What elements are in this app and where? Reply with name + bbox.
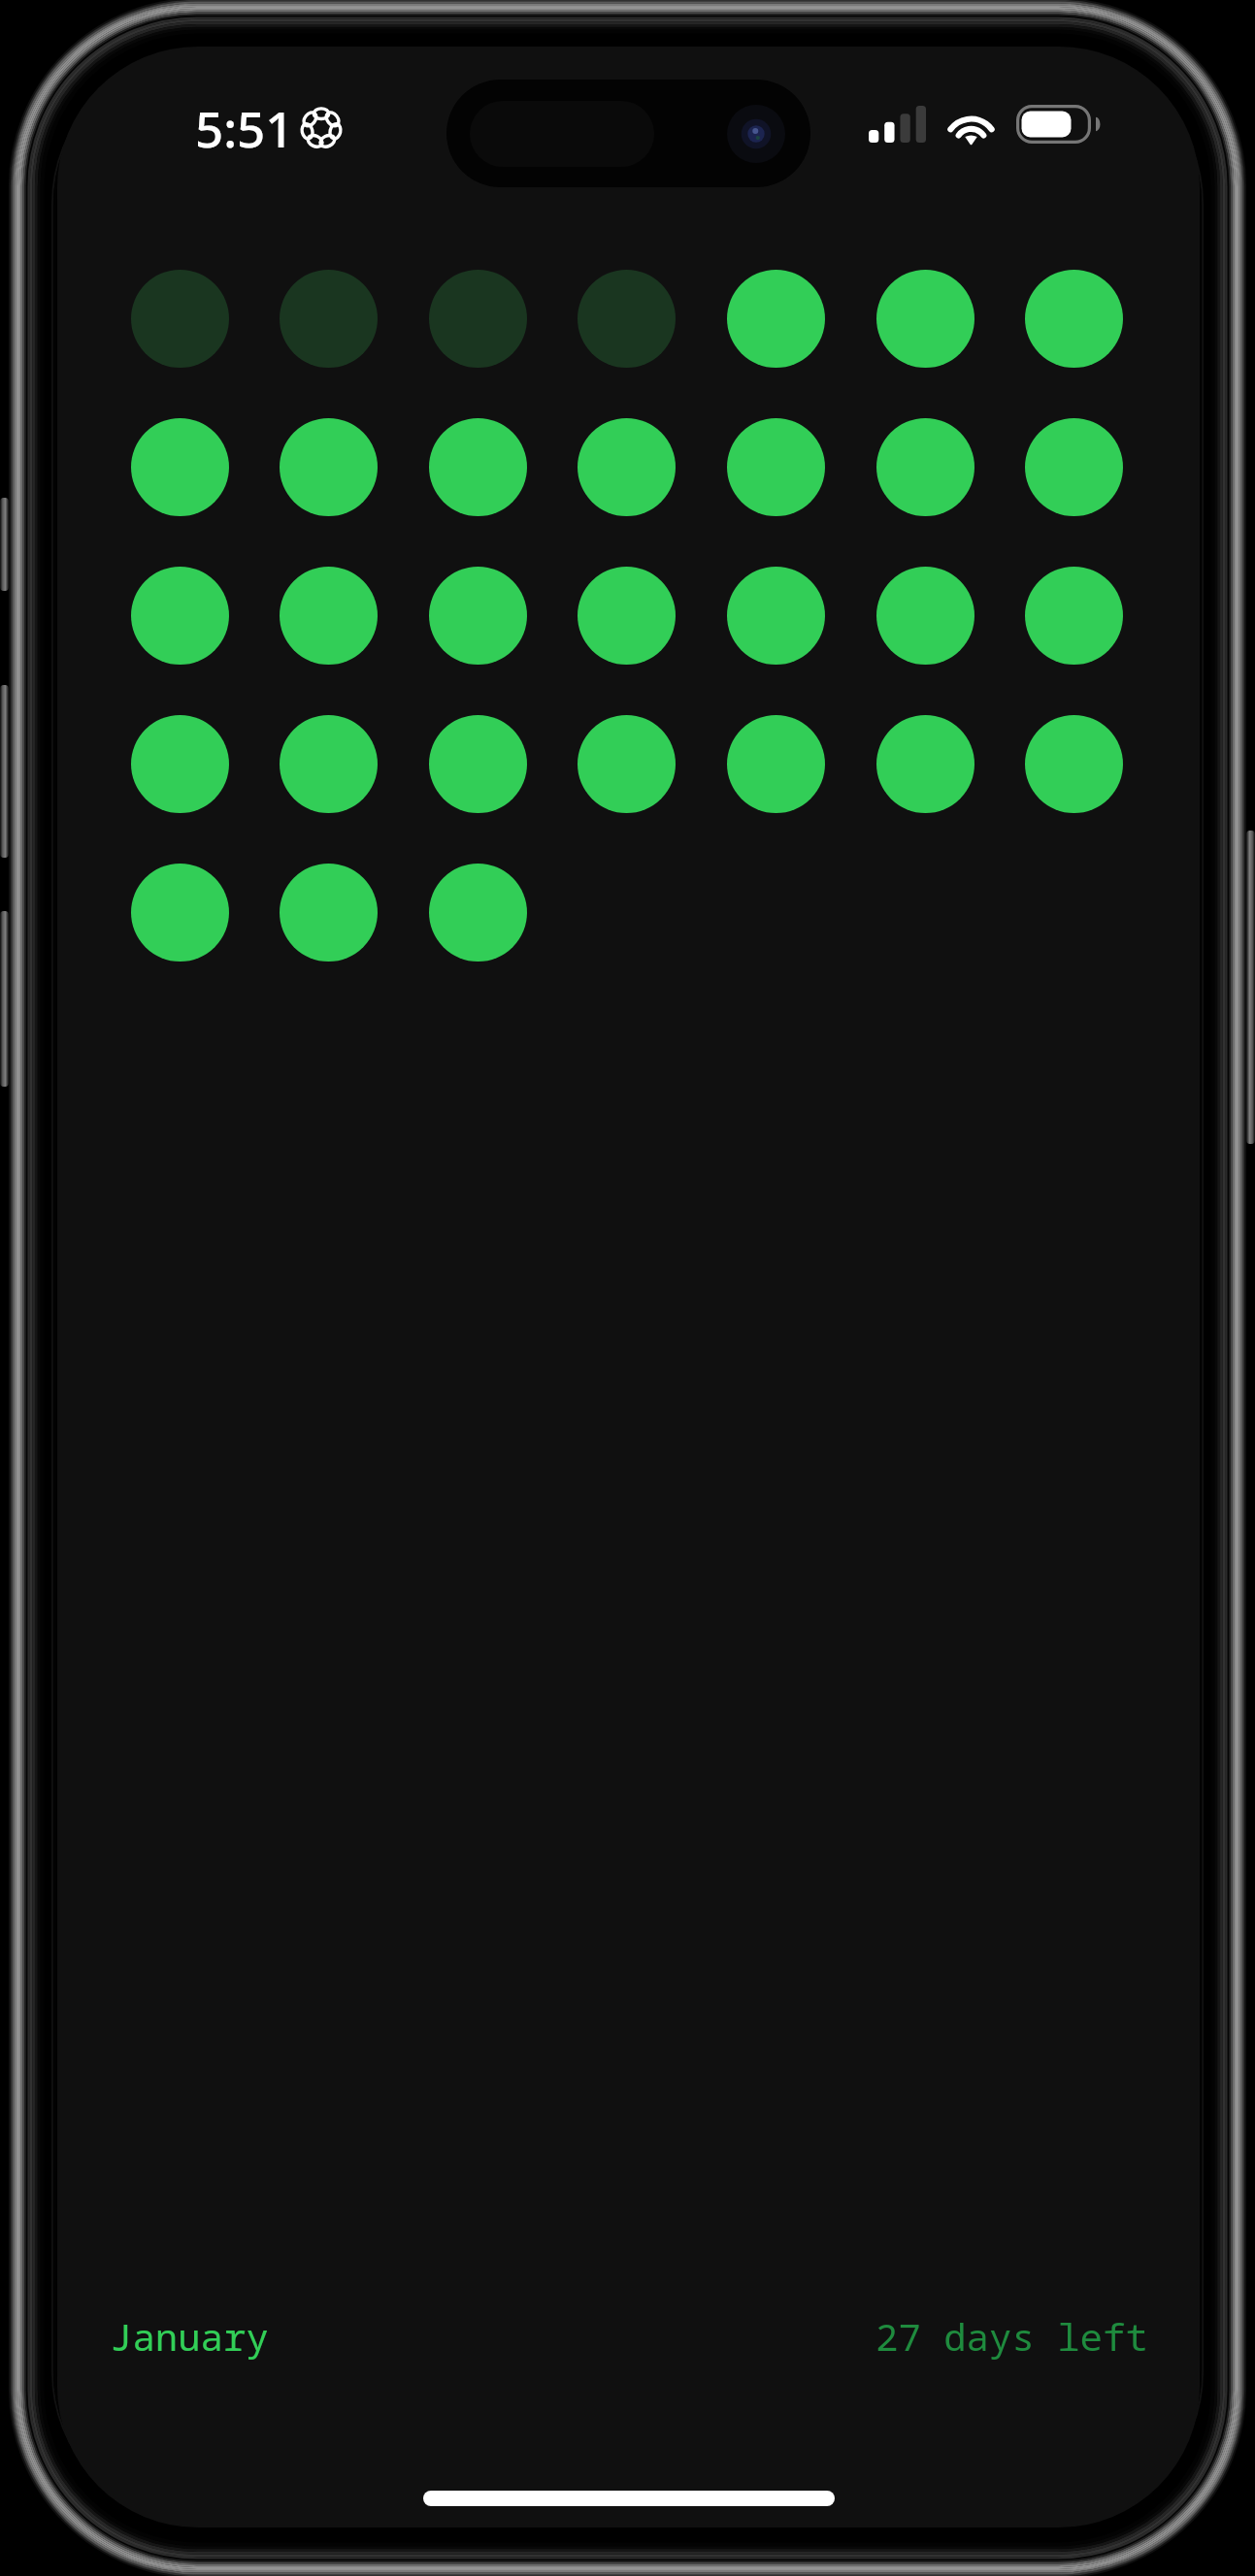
staticText: 5:51 bbox=[195, 94, 294, 161]
button[interactable]: January 31, remaining bbox=[429, 864, 527, 962]
button[interactable]: January 23, remaining bbox=[280, 715, 378, 813]
button[interactable]: January 1, past bbox=[131, 270, 229, 368]
other: Battery 66 percent bbox=[1016, 105, 1100, 144]
button[interactable]: January 19, remaining bbox=[727, 567, 825, 665]
button[interactable]: January 28, remaining bbox=[1025, 715, 1123, 813]
other: Cellular signal 2 bars bbox=[869, 106, 926, 143]
button[interactable]: January 2, past bbox=[280, 270, 378, 368]
button[interactable]: January 3, past bbox=[429, 270, 527, 368]
button[interactable]: January 18, remaining bbox=[578, 567, 676, 665]
button[interactable]: January 11, remaining bbox=[578, 418, 676, 516]
button[interactable]: January 13, remaining bbox=[876, 418, 974, 516]
button[interactable]: January 14, remaining bbox=[1025, 418, 1123, 516]
button[interactable]: January 25, remaining bbox=[578, 715, 676, 813]
button[interactable]: January 29, remaining bbox=[131, 864, 229, 962]
other: Home indicator bbox=[423, 2491, 835, 2506]
button[interactable]: January bbox=[110, 2310, 269, 2361]
button[interactable]: January 22, remaining bbox=[131, 715, 229, 813]
staticText: January bbox=[110, 2310, 269, 2361]
button[interactable]: January 12, remaining bbox=[727, 418, 825, 516]
button[interactable]: January 30, remaining bbox=[280, 864, 378, 962]
button[interactable]: January 8, remaining bbox=[131, 418, 229, 516]
button[interactable]: 5:51 bbox=[195, 94, 344, 161]
button[interactable]: 27 days left bbox=[875, 2310, 1148, 2361]
button[interactable]: January 17, remaining bbox=[429, 567, 527, 665]
button[interactable]: January 21, remaining bbox=[1025, 567, 1123, 665]
button[interactable]: January 15, remaining bbox=[131, 567, 229, 665]
button[interactable]: January 27, remaining bbox=[876, 715, 974, 813]
button[interactable]: January 24, remaining bbox=[429, 715, 527, 813]
other: Wi-Fi connected bbox=[945, 105, 997, 144]
button[interactable]: January 26, remaining bbox=[727, 715, 825, 813]
button[interactable]: January 10, remaining bbox=[429, 418, 527, 516]
button[interactable]: January 9, remaining bbox=[280, 418, 378, 516]
staticText: 27 days left bbox=[875, 2310, 1148, 2361]
button[interactable]: January 20, remaining bbox=[876, 567, 974, 665]
button[interactable]: January 6, remaining bbox=[876, 270, 974, 368]
button[interactable]: Cellular signal 2 bars bbox=[869, 105, 1100, 144]
button[interactable]: January 7, remaining bbox=[1025, 270, 1123, 368]
other: Focus mode on bbox=[299, 106, 344, 150]
button[interactable]: January 16, remaining bbox=[280, 567, 378, 665]
button[interactable]: January 4, past bbox=[578, 270, 676, 368]
button[interactable]: January 5, remaining bbox=[727, 270, 825, 368]
